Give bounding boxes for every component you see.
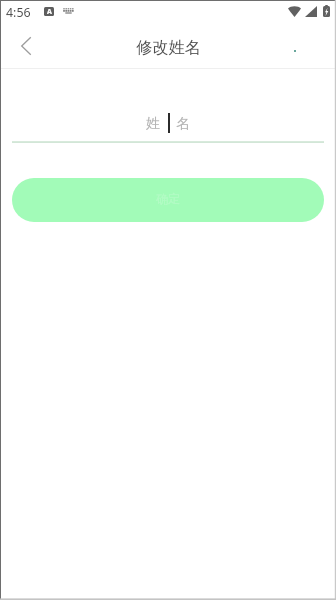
button[interactable]: 姓 xyxy=(12,113,167,135)
button[interactable]: 名 xyxy=(170,113,324,135)
staticText: 姓 xyxy=(146,115,160,133)
staticText: 名 xyxy=(176,115,190,133)
staticText: 确定 xyxy=(156,191,180,206)
staticText: 修改姓名 xyxy=(136,37,201,57)
staticText: 4:56 xyxy=(6,4,31,21)
button[interactable]: Back xyxy=(5,24,46,69)
button[interactable]: 确定 xyxy=(12,178,324,222)
staticText: A xyxy=(47,7,52,16)
